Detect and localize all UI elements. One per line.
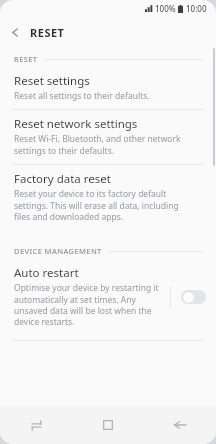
button[interactable]: Reset network settings [0,110,216,164]
staticText: Reset Wi-Fi, Bluetooth, and other networ… [14,133,194,157]
staticText: Auto restart [14,265,79,281]
button[interactable]: Auto restart [171,277,216,317]
button[interactable]: Auto restart [0,259,216,335]
staticText: RESET [30,25,65,40]
staticText: 10:00 [186,3,207,14]
staticText: Optimise your device by restarting it au… [14,282,166,328]
staticText: DEVICE MANAGEMENT [14,246,102,256]
staticText: 100% [155,3,176,14]
button[interactable]: Back [0,17,30,47]
staticText: Reset settings [14,73,90,89]
button[interactable]: Back [144,406,216,444]
button[interactable]: Reset settings [0,67,216,109]
button[interactable]: Recent apps [0,406,72,444]
staticText: Factory data reset [14,171,111,187]
button[interactable]: Home [72,406,144,444]
staticText: Reset all settings to their defaults. [14,90,150,102]
staticText: Reset network settings [14,116,138,132]
staticText: RESET [14,54,38,64]
button[interactable]: Factory data reset [0,165,216,230]
staticText: Reset your device to its factory default… [14,188,194,223]
